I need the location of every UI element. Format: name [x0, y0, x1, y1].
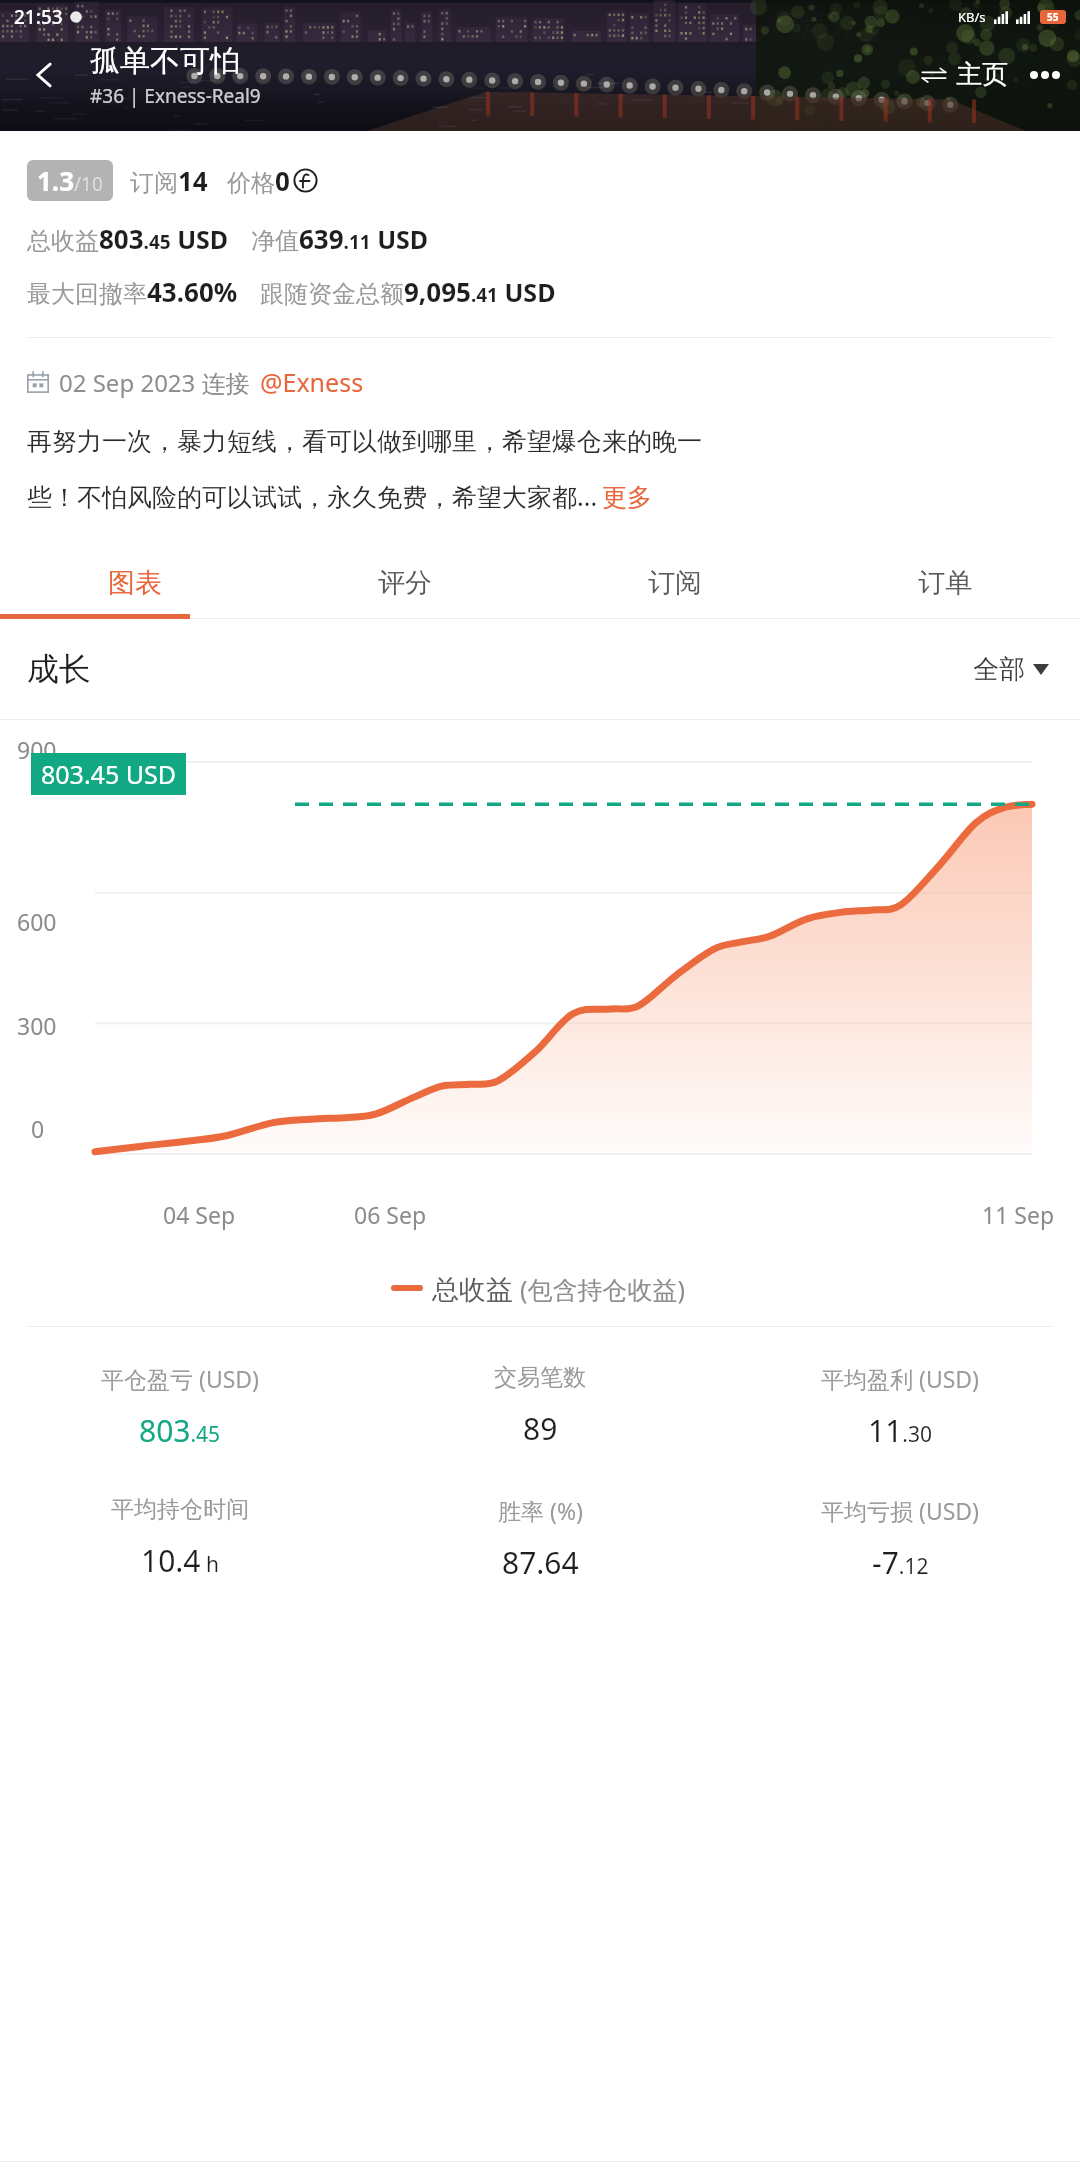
staticText: 再努力一次，暴力短线，看可以做到哪里，希望爆仓来的晚一 — [27, 426, 702, 457]
staticText: 胜率 (%) — [498, 1495, 583, 1526]
staticText: @Exness — [260, 365, 364, 399]
button[interactable]: 订阅 — [540, 547, 810, 619]
staticText: 全部 — [973, 653, 1025, 686]
staticText: 跟随资金总额9,095.41 USD — [260, 274, 556, 309]
staticText: #36 | Exness-Real9 — [90, 83, 261, 109]
staticText: 主页 — [956, 58, 1008, 91]
staticText: 87.64 — [502, 1542, 579, 1583]
staticText: 总收益 (包含持仓收益) — [432, 1270, 686, 1307]
staticText: 02 Sep 2023 连接 — [59, 366, 250, 399]
staticText: 孤单不可怕 — [90, 42, 240, 80]
staticText: 89 — [523, 1408, 558, 1449]
staticText: 803.45 USD — [41, 757, 176, 791]
staticText: 803.45 — [139, 1410, 221, 1451]
staticText: 900 — [17, 734, 57, 765]
staticText: 21:53 — [14, 4, 63, 30]
staticText: 平均亏损 (USD) — [821, 1495, 980, 1526]
button[interactable]: 图表 — [0, 547, 270, 619]
button[interactable]: 主页 — [916, 52, 1012, 97]
staticText: 0 — [31, 1113, 45, 1144]
staticText: 1.3/10 — [37, 163, 103, 198]
staticText: 总收益803.45 USD — [27, 221, 229, 256]
button[interactable]: Back — [18, 49, 70, 101]
staticText: 订阅 — [648, 566, 702, 600]
staticText: 10.4 h — [141, 1540, 219, 1581]
staticText: 更多 — [602, 482, 652, 513]
staticText: 06 Sep — [354, 1199, 427, 1230]
staticText: 55 — [1047, 10, 1059, 24]
staticText: 300 — [17, 1010, 57, 1041]
button[interactable]: 评分 — [270, 547, 540, 619]
staticText: 600 — [17, 906, 57, 937]
button[interactable]: More options — [1024, 54, 1066, 96]
staticText: 净值639.11 USD — [251, 221, 429, 256]
staticText: 些！不怕风险的可以试试，永久免费，希望大家都... — [27, 479, 598, 513]
staticText: 平仓盈亏 (USD) — [101, 1363, 260, 1394]
staticText: 订阅14 — [130, 163, 208, 198]
staticText: 平均盈利 (USD) — [821, 1363, 980, 1394]
staticText: 价格0 — [227, 163, 290, 198]
staticText: 成长 — [27, 649, 91, 689]
staticText: 11 Sep — [982, 1199, 1055, 1230]
button[interactable]: 全部 — [969, 647, 1053, 692]
staticText: 订单 — [918, 566, 972, 600]
button[interactable]: 订单 — [810, 547, 1080, 619]
staticText: 平均持仓时间 — [111, 1495, 249, 1524]
staticText: 04 Sep — [163, 1199, 236, 1230]
staticText: 评分 — [378, 566, 432, 600]
button[interactable]: @Exness — [260, 365, 364, 399]
staticText: -7.12 — [872, 1542, 929, 1583]
staticText: KB/s — [958, 8, 986, 26]
staticText: 图表 — [108, 566, 162, 600]
staticText: 11.30 — [868, 1410, 932, 1451]
staticText: 最大回撤率43.60% — [27, 274, 238, 309]
button[interactable]: 更多 — [598, 482, 652, 513]
staticText: 交易笔数 — [494, 1363, 586, 1392]
